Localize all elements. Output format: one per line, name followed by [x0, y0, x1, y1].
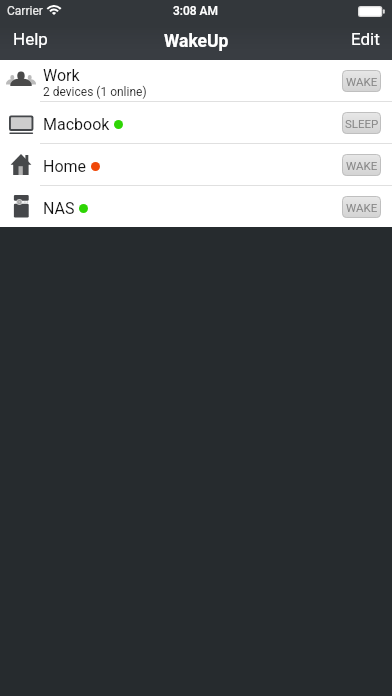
- staticText: NAS: [43, 199, 75, 218]
- other: NAS: [6, 192, 36, 222]
- button[interactable]: Group: [0, 60, 392, 101]
- button[interactable]: SLEEP: [342, 112, 381, 134]
- staticText: Work: [43, 66, 80, 85]
- staticText: WAKE: [346, 75, 378, 88]
- staticText: Help: [13, 29, 48, 49]
- button[interactable]: WAKE: [342, 154, 381, 176]
- staticText: 3:08 AM: [173, 4, 219, 18]
- staticText: WAKE: [346, 201, 378, 214]
- button[interactable]: NAS: [0, 186, 392, 227]
- other: Group: [6, 66, 36, 96]
- other: Laptop: [6, 108, 36, 138]
- button[interactable]: Edit: [339, 23, 392, 55]
- staticText: 2 devices (1 online): [43, 85, 147, 99]
- other: Home: [6, 150, 36, 180]
- button[interactable]: Help: [0, 23, 61, 55]
- button[interactable]: WAKE: [342, 70, 381, 92]
- staticText: Edit: [351, 29, 380, 49]
- staticText: WAKE: [346, 159, 378, 172]
- staticText: Home: [43, 157, 87, 176]
- staticText: SLEEP: [345, 117, 379, 130]
- staticText: Macbook: [43, 115, 110, 134]
- button[interactable]: Laptop: [0, 102, 392, 143]
- button[interactable]: Home: [0, 144, 392, 185]
- staticText: Carrier: [7, 4, 43, 18]
- button[interactable]: WAKE: [342, 196, 381, 218]
- staticText: WakeUp: [164, 31, 229, 52]
